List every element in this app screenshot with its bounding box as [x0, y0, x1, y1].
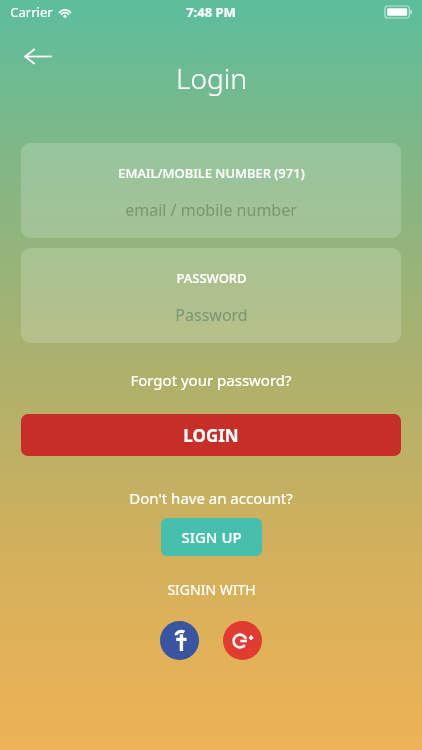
- button[interactable]: PASSWORD: [21, 248, 401, 343]
- button[interactable]: LOGIN: [21, 414, 401, 456]
- staticText: SIGN UP: [181, 527, 242, 547]
- button[interactable]: Sign in with Facebook: [160, 621, 199, 660]
- button[interactable]: EMAIL/MOBILE NUMBER (971): [21, 143, 401, 238]
- staticText: SIGNIN WITH: [167, 580, 256, 599]
- button[interactable]: Sign in with Google: [223, 621, 262, 660]
- staticText: LOGIN: [183, 424, 239, 447]
- staticText: EMAIL/MOBILE NUMBER (971): [118, 164, 305, 182]
- staticText: PASSWORD: [176, 269, 247, 287]
- staticText: Login: [176, 59, 247, 97]
- button[interactable]: SIGN UP: [161, 518, 262, 556]
- staticText: 7:48 PM: [186, 3, 236, 21]
- staticText: Carrier: [10, 3, 53, 21]
- staticText: Don't have an account?: [129, 488, 293, 508]
- staticText: Password: [175, 304, 248, 326]
- button[interactable]: Forgot your password?: [0, 365, 422, 395]
- staticText: Forgot your password?: [130, 370, 292, 390]
- staticText: email / mobile number: [125, 199, 297, 221]
- button[interactable]: Back: [13, 38, 61, 74]
